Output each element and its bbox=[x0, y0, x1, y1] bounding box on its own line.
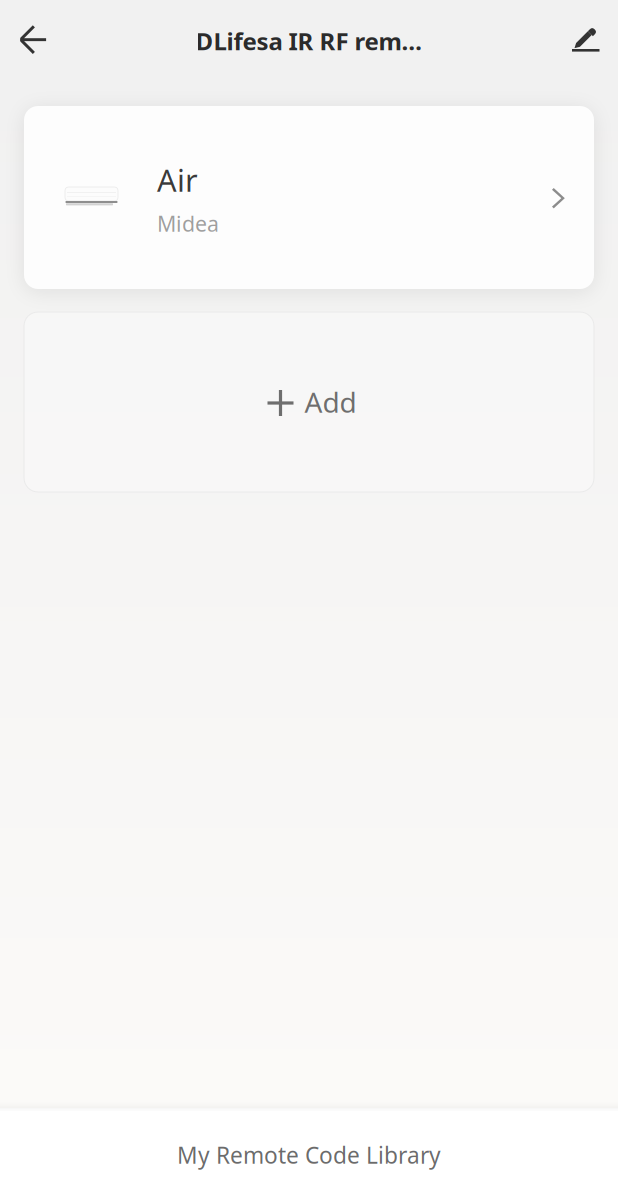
button[interactable]: Add bbox=[0, 312, 618, 492]
staticText: Add bbox=[304, 383, 356, 421]
staticText: DLifesa IR RF rem… bbox=[195, 25, 422, 57]
button[interactable]: Back bbox=[2, 9, 64, 71]
button[interactable]: Edit bbox=[555, 9, 617, 71]
staticText: Midea bbox=[157, 209, 219, 237]
staticText: My Remote Code Library bbox=[177, 1140, 441, 1170]
button[interactable]: Air bbox=[0, 106, 618, 289]
staticText: Air bbox=[157, 159, 198, 200]
button[interactable]: My Remote Code Library bbox=[0, 1108, 618, 1200]
